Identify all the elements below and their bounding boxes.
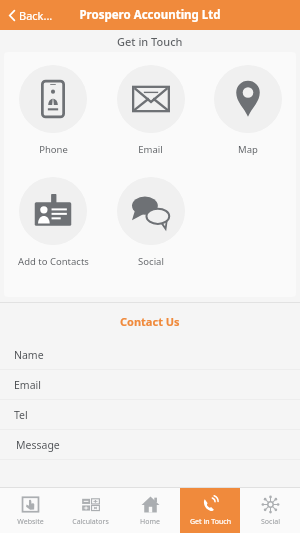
- button[interactable]: Social: [240, 488, 300, 533]
- button[interactable]: Get in Touch: [180, 488, 240, 533]
- staticText: Email: [138, 143, 163, 156]
- button[interactable]: Email: [102, 52, 199, 164]
- staticText: Name: [14, 348, 44, 362]
- staticText: Social: [138, 255, 164, 268]
- staticText: Map: [238, 143, 258, 156]
- button[interactable]: Home: [120, 488, 180, 533]
- staticText: Prospero Accounting Ltd: [79, 7, 221, 23]
- button[interactable]: Social: [102, 164, 199, 276]
- button[interactable]: Tel: [0, 400, 300, 429]
- staticText: Get in Touch: [190, 517, 231, 527]
- staticText: Phone: [39, 143, 68, 156]
- staticText: Contact Us: [120, 314, 180, 329]
- staticText: Calculators: [72, 517, 109, 527]
- staticText: Website: [17, 517, 44, 527]
- staticText: Get in Touch: [117, 34, 183, 49]
- button[interactable]: Back...: [5, 5, 56, 26]
- staticText: Tel: [14, 408, 28, 422]
- staticText: Email: [14, 378, 41, 392]
- button[interactable]: Map: [199, 52, 296, 164]
- staticText: Message: [16, 438, 60, 452]
- button[interactable]: Name: [0, 340, 300, 369]
- staticText: Back...: [19, 8, 53, 23]
- button[interactable]: Website: [0, 488, 60, 533]
- staticText: Social: [261, 517, 280, 527]
- button[interactable]: Add to Contacts: [4, 164, 102, 276]
- button[interactable]: Phone: [4, 52, 102, 164]
- staticText: Add to Contacts: [18, 255, 89, 268]
- button[interactable]: Message: [0, 430, 300, 459]
- staticText: Home: [140, 517, 160, 527]
- button[interactable]: Email: [0, 370, 300, 399]
- button[interactable]: Calculators: [60, 488, 120, 533]
